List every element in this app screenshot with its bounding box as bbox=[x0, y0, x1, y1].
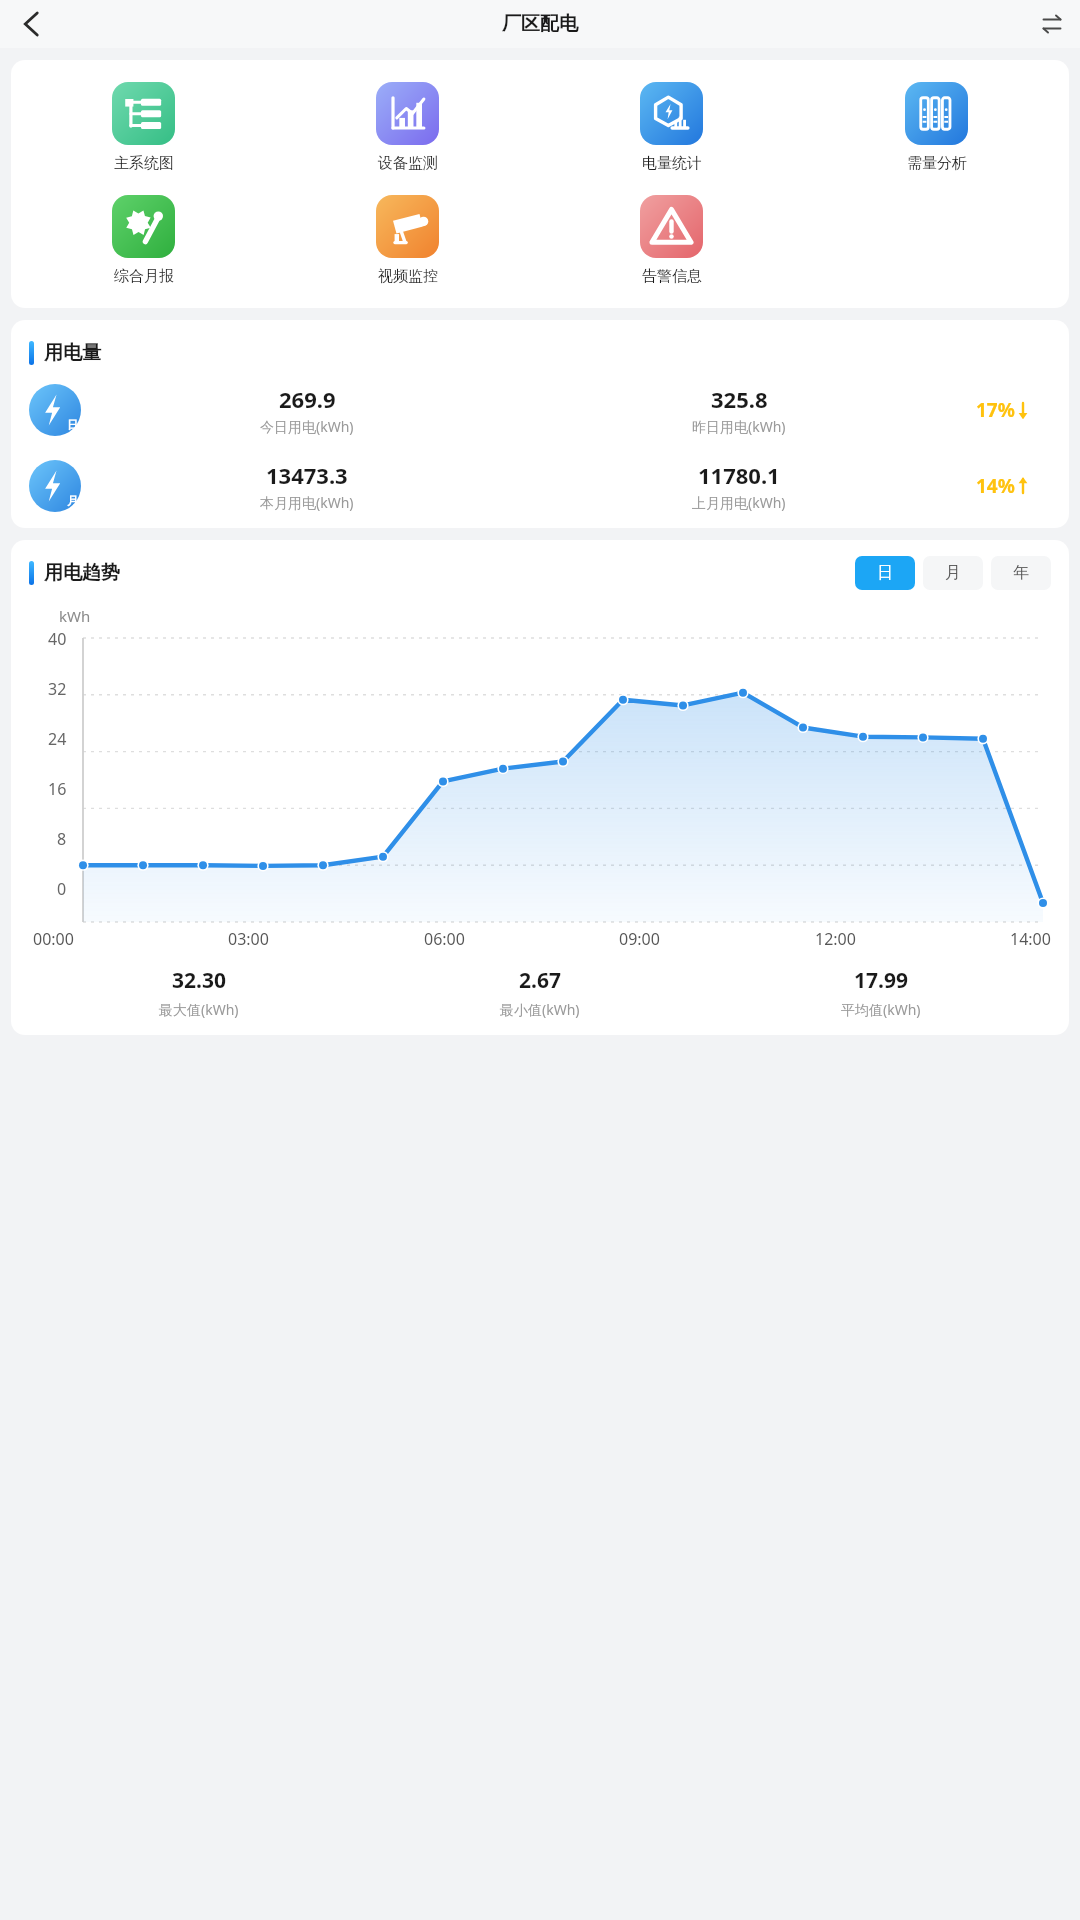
button[interactable]: 日 bbox=[29, 384, 1051, 436]
staticText: 设备监测 bbox=[378, 154, 438, 173]
staticText: 综合月报 bbox=[114, 267, 174, 286]
staticText: 2.67 bbox=[519, 966, 561, 995]
button[interactable]: Switch bbox=[1032, 4, 1072, 44]
staticText: 325.8 bbox=[711, 384, 768, 414]
button[interactable]: 主系统图 bbox=[106, 78, 181, 177]
staticText: 269.9 bbox=[279, 384, 336, 414]
staticText: 17.99 bbox=[854, 966, 908, 995]
button[interactable]: Back bbox=[6, 2, 50, 46]
staticText: 视频监控 bbox=[378, 267, 438, 286]
button[interactable]: 月 bbox=[923, 556, 983, 590]
staticText: 电量统计 bbox=[642, 154, 702, 173]
staticText: 最小值(kWh) bbox=[500, 1000, 580, 1019]
button[interactable]: 年 bbox=[991, 556, 1051, 590]
staticText: 40 bbox=[48, 628, 67, 650]
staticText: 0 bbox=[57, 878, 67, 900]
staticText: 用电量 bbox=[44, 341, 101, 365]
staticText: 11780.1 bbox=[698, 460, 780, 490]
staticText: 日 bbox=[877, 563, 893, 583]
staticText: 今日用电(kWh) bbox=[260, 417, 354, 436]
button[interactable]: 电量统计 bbox=[634, 78, 709, 177]
staticText: 月 bbox=[945, 563, 961, 583]
button[interactable]: 视频监控 bbox=[370, 191, 445, 290]
button[interactable]: 综合月报 bbox=[106, 191, 181, 290]
staticText: 17% bbox=[976, 397, 1015, 423]
staticText: 平均值(kWh) bbox=[841, 1000, 921, 1019]
button[interactable]: 月 bbox=[29, 460, 1051, 512]
staticText: 06:00 bbox=[424, 928, 465, 950]
staticText: 告警信息 bbox=[642, 267, 702, 286]
staticText: 09:00 bbox=[619, 928, 660, 950]
staticText: 年 bbox=[1013, 563, 1029, 583]
staticText: 32 bbox=[48, 678, 67, 700]
staticText: kWh bbox=[59, 606, 91, 626]
staticText: 用电趋势 bbox=[44, 561, 120, 585]
staticText: 12:00 bbox=[815, 928, 856, 950]
staticText: 14:00 bbox=[1010, 928, 1051, 950]
staticText: 日 bbox=[67, 418, 78, 432]
staticText: 昨日用电(kWh) bbox=[692, 417, 786, 436]
staticText: 主系统图 bbox=[114, 154, 174, 173]
staticText: 上月用电(kWh) bbox=[692, 493, 786, 512]
staticText: 需量分析 bbox=[907, 154, 967, 173]
button[interactable]: 告警信息 bbox=[634, 191, 709, 290]
staticText: 月 bbox=[67, 494, 78, 508]
staticText: 24 bbox=[48, 728, 67, 750]
staticText: 厂区配电 bbox=[502, 12, 578, 36]
staticText: 本月用电(kWh) bbox=[260, 493, 354, 512]
staticText: 8 bbox=[57, 828, 67, 850]
button[interactable]: 设备监测 bbox=[370, 78, 445, 177]
staticText: 32.30 bbox=[172, 966, 226, 995]
staticText: 14% bbox=[976, 473, 1015, 499]
button[interactable]: 日 bbox=[855, 556, 915, 590]
staticText: 00:00 bbox=[33, 928, 74, 950]
staticText: 16 bbox=[48, 778, 67, 800]
staticText: 最大值(kWh) bbox=[159, 1000, 239, 1019]
staticText: 13473.3 bbox=[266, 460, 348, 490]
staticText: 03:00 bbox=[228, 928, 269, 950]
button[interactable]: 需量分析 bbox=[899, 78, 974, 177]
